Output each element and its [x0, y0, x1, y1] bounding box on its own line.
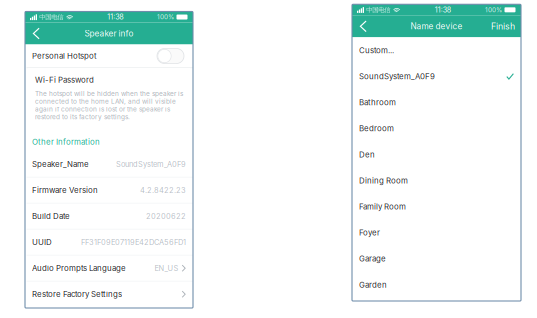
- button[interactable]: Firmware Version: [25, 177, 193, 203]
- staticText: Firmware Version: [32, 185, 98, 195]
- staticText: Family Room: [359, 202, 406, 211]
- button[interactable]: Bedroom: [352, 115, 521, 141]
- staticText: 中国电信: [366, 6, 390, 14]
- button[interactable]: Speaker_Name: [25, 151, 193, 177]
- button[interactable]: Audio Prompts Language: [25, 255, 193, 281]
- staticText: Finish: [491, 21, 515, 32]
- staticText: SoundSystem_A0F9: [359, 72, 435, 81]
- staticText: Custom...: [359, 46, 394, 55]
- staticText: Build Date: [32, 211, 70, 221]
- staticText: Bathroom: [359, 98, 396, 107]
- staticText: 中国电信: [39, 13, 63, 21]
- staticText: 11:38: [107, 13, 123, 21]
- button[interactable]: SoundSystem_A0F9: [352, 63, 521, 89]
- staticText: 20200622: [146, 212, 186, 221]
- button[interactable]: Den: [352, 141, 521, 168]
- staticText: Wi-Fi Password: [35, 75, 94, 85]
- button[interactable]: Garage: [352, 246, 521, 272]
- staticText: 100%: [485, 6, 502, 14]
- staticText: Speaker info: [84, 28, 133, 38]
- staticText: Bedroom: [359, 124, 394, 133]
- staticText: Garage: [359, 254, 386, 263]
- staticText: FF31F09E07119E42DCA56FD1: [81, 238, 186, 247]
- button[interactable]: Finish: [485, 15, 521, 37]
- button[interactable]: Restore Factory Settings: [25, 281, 193, 307]
- staticText: 100%: [157, 13, 174, 21]
- button[interactable]: UUID: [25, 229, 193, 255]
- staticText: UUID: [32, 237, 52, 247]
- staticText: Name device: [410, 21, 462, 31]
- button[interactable]: Family Room: [352, 194, 521, 220]
- staticText: EN_US: [155, 264, 179, 273]
- button[interactable]: Garden: [352, 272, 521, 298]
- staticText: Speaker_Name: [32, 159, 89, 169]
- button[interactable]: Dining Room: [352, 168, 521, 194]
- staticText: 11:38: [435, 5, 451, 14]
- button[interactable]: Back: [352, 15, 375, 37]
- staticText: Foyer: [359, 228, 380, 237]
- staticText: Dining Room: [359, 176, 408, 185]
- staticText: 4.2.8422.23: [140, 186, 186, 195]
- staticText: Audio Prompts Language: [32, 263, 126, 273]
- button[interactable]: Back: [25, 22, 48, 44]
- button[interactable]: Bathroom: [352, 89, 521, 115]
- button[interactable]: Personal Hotspot: [25, 44, 193, 67]
- staticText: SoundSystem_A0F9: [116, 160, 186, 169]
- button[interactable]: Build Date: [25, 203, 193, 229]
- staticText: The hotspot will be hidden when the spea…: [35, 90, 183, 121]
- staticText: Personal Hotspot: [32, 51, 97, 61]
- button[interactable]: Custom...: [352, 37, 521, 63]
- button[interactable]: Foyer: [352, 220, 521, 246]
- staticText: Den: [359, 150, 375, 159]
- staticText: Garden: [359, 280, 387, 289]
- staticText: Restore Factory Settings: [32, 289, 122, 299]
- staticText: Other Information: [32, 137, 100, 147]
